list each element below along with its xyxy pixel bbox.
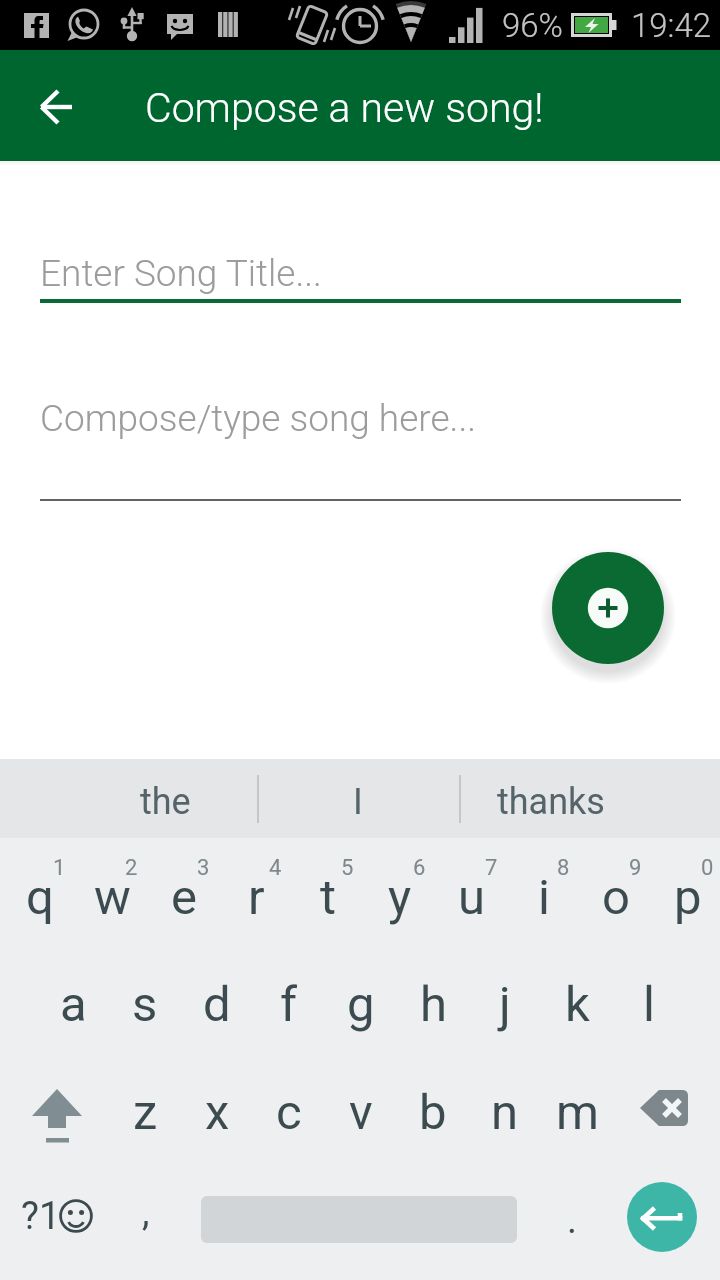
button[interactable]: c — [252, 1054, 324, 1162]
staticText: 1 — [53, 855, 66, 881]
staticText: b — [419, 1084, 447, 1141]
staticText: , — [142, 1190, 150, 1235]
button[interactable]: e — [144, 838, 216, 946]
staticText: 2 — [125, 855, 138, 881]
button[interactable]: v — [324, 1054, 396, 1162]
button[interactable]: b — [396, 1054, 468, 1162]
button[interactable]: Enter — [627, 1182, 697, 1252]
staticText: 0 — [701, 855, 714, 881]
button[interactable]: u — [432, 838, 504, 946]
button[interactable]: k — [540, 946, 612, 1054]
staticText: I — [353, 781, 363, 823]
button[interactable]: z — [108, 1054, 180, 1162]
button[interactable]: q — [0, 838, 72, 946]
staticText: e — [171, 869, 197, 926]
staticText: s — [132, 976, 158, 1033]
staticText: ?1 — [21, 1194, 61, 1239]
button[interactable]: w — [72, 838, 144, 946]
button[interactable]: d — [180, 946, 252, 1054]
staticText: 6 — [413, 855, 426, 881]
staticText: m — [556, 1084, 599, 1141]
staticText: o — [602, 869, 630, 926]
staticText: . — [567, 1198, 578, 1243]
button[interactable]: Navigate up — [25, 74, 89, 138]
button[interactable]: Add song — [552, 552, 664, 664]
staticText: a — [60, 976, 87, 1033]
staticText: l — [643, 976, 655, 1033]
button[interactable]: , — [104, 1162, 188, 1280]
staticText: q — [26, 869, 54, 926]
button[interactable]: l — [612, 946, 684, 1054]
staticText: d — [203, 976, 231, 1033]
staticText: u — [458, 869, 486, 926]
button[interactable]: n — [468, 1054, 540, 1162]
staticText: 8 — [557, 855, 570, 881]
button[interactable]: h — [396, 946, 468, 1054]
button[interactable]: i — [504, 838, 576, 946]
button[interactable]: Backspace — [612, 1054, 720, 1162]
button[interactable]: m — [540, 1054, 612, 1162]
button[interactable]: I — [258, 759, 458, 838]
staticText: Compose/type song here... — [40, 397, 477, 440]
staticText: 96% — [502, 6, 564, 45]
staticText: g — [347, 976, 375, 1033]
button[interactable]: a — [36, 946, 108, 1054]
staticText: Enter Song Title... — [40, 252, 322, 295]
staticText: w — [94, 869, 131, 926]
staticText: f — [280, 976, 298, 1033]
staticText: k — [565, 976, 590, 1033]
staticText: v — [349, 1084, 373, 1141]
button[interactable]: y — [360, 838, 432, 946]
button[interactable]: . — [520, 1162, 620, 1280]
staticText: r — [248, 869, 265, 926]
button[interactable]: Symbols and emoji — [0, 1162, 116, 1280]
staticText: n — [491, 1084, 519, 1141]
staticText: 19:42 — [631, 6, 712, 45]
staticText: the — [140, 781, 191, 823]
staticText: j — [499, 976, 511, 1033]
button[interactable]: s — [108, 946, 180, 1054]
staticText: thanks — [497, 781, 605, 823]
staticText: 4 — [269, 855, 282, 881]
button[interactable]: t — [288, 838, 360, 946]
button[interactable]: f — [252, 946, 324, 1054]
button[interactable]: p — [648, 838, 720, 946]
staticText: c — [276, 1084, 302, 1141]
staticText: x — [205, 1084, 230, 1141]
staticText: 7 — [485, 855, 498, 881]
button[interactable]: x — [180, 1054, 252, 1162]
button[interactable]: g — [324, 946, 396, 1054]
button[interactable]: o — [576, 838, 648, 946]
button[interactable]: the — [35, 759, 295, 838]
button[interactable]: Shift — [0, 1054, 108, 1162]
button[interactable]: r — [216, 838, 288, 946]
staticText: t — [320, 869, 337, 926]
staticText: h — [420, 976, 447, 1033]
button[interactable]: thanks — [461, 759, 641, 838]
button[interactable]: j — [468, 946, 540, 1054]
staticText: p — [674, 869, 702, 926]
staticText: 5 — [341, 855, 354, 881]
staticText: i — [538, 869, 550, 926]
staticText: 9 — [629, 855, 642, 881]
staticText: y — [388, 869, 412, 926]
staticText: z — [133, 1084, 158, 1141]
staticText: 3 — [197, 855, 210, 881]
staticText: Compose a new song! — [145, 84, 544, 132]
